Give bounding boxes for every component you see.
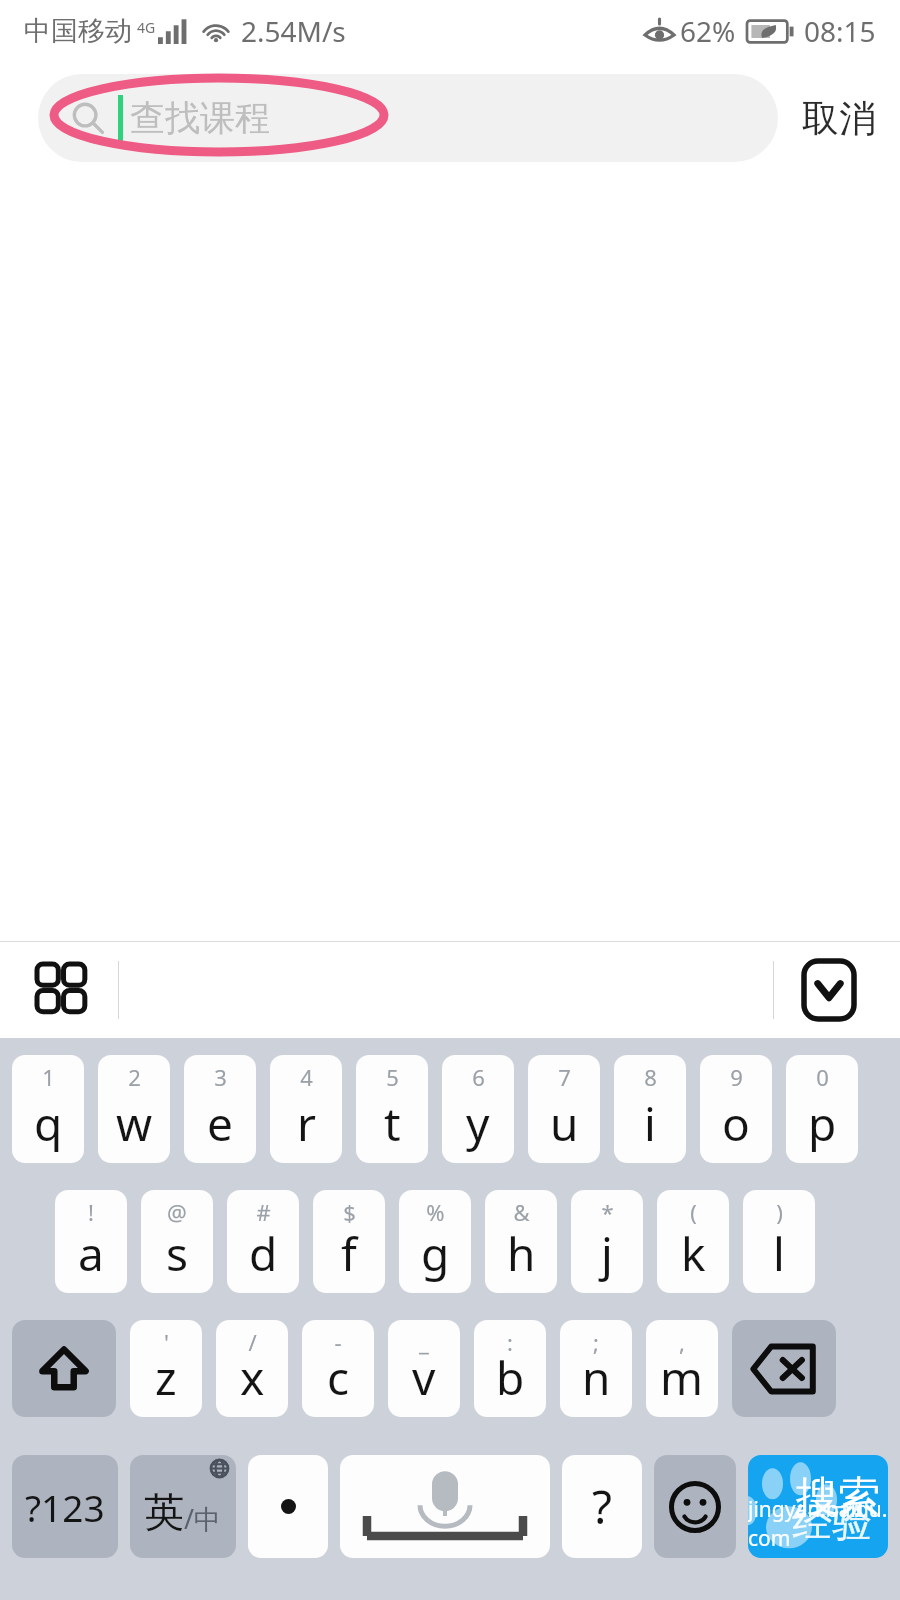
staticText: ): [776, 1197, 783, 1227]
staticText: k: [681, 1222, 706, 1285]
staticText: g: [421, 1222, 450, 1285]
staticText: 2: [128, 1062, 141, 1092]
staticText: x: [240, 1346, 265, 1409]
staticText: e: [207, 1092, 233, 1155]
staticText: v: [412, 1346, 436, 1409]
button[interactable]: 9: [700, 1055, 772, 1163]
staticText: 4G: [137, 18, 156, 37]
button[interactable]: Emoji: [654, 1455, 736, 1558]
staticText: u: [550, 1092, 579, 1155]
staticText: 8: [644, 1062, 657, 1092]
staticText: 4: [300, 1062, 313, 1092]
button[interactable]: 6: [442, 1055, 514, 1163]
staticText: 7: [558, 1062, 571, 1092]
staticText: 6: [472, 1062, 485, 1092]
button[interactable]: &: [485, 1190, 557, 1293]
button[interactable]: :: [474, 1320, 546, 1417]
button[interactable]: 1: [12, 1055, 84, 1163]
button[interactable]: #: [227, 1190, 299, 1293]
button[interactable]: 查找课程: [38, 74, 778, 162]
button[interactable]: Space: [340, 1455, 550, 1558]
staticText: 08:15: [804, 12, 876, 50]
staticText: _: [419, 1327, 429, 1357]
staticText: 取消: [802, 95, 876, 142]
button[interactable]: 4: [270, 1055, 342, 1163]
button[interactable]: 2: [98, 1055, 170, 1163]
staticText: ': [164, 1327, 169, 1357]
staticText: z: [155, 1346, 177, 1409]
button[interactable]: @: [141, 1190, 213, 1293]
button[interactable]: 5: [356, 1055, 428, 1163]
staticText: jingyan.baidu.com: [748, 1495, 888, 1553]
staticText: r: [297, 1092, 316, 1155]
staticText: ;: [593, 1327, 599, 1357]
staticText: j: [601, 1222, 613, 1285]
staticText: 3: [214, 1062, 227, 1092]
staticText: o: [722, 1092, 750, 1155]
button[interactable]: (: [657, 1190, 729, 1293]
button[interactable]: !: [55, 1190, 127, 1293]
staticText: (: [690, 1197, 697, 1227]
staticText: m: [660, 1346, 704, 1409]
button[interactable]: ,: [646, 1320, 718, 1417]
button[interactable]: 0: [786, 1055, 858, 1163]
staticText: b: [496, 1346, 525, 1409]
staticText: n: [582, 1346, 611, 1409]
staticText: 62%: [680, 12, 736, 50]
staticText: f: [341, 1222, 357, 1285]
button[interactable]: Backspace: [732, 1320, 836, 1417]
staticText: 查找课程: [130, 96, 270, 140]
button[interactable]: Period: [248, 1455, 328, 1558]
staticText: ?123: [25, 1482, 105, 1532]
staticText: 1: [42, 1062, 55, 1092]
staticText: 中国移动: [24, 14, 132, 48]
staticText: c: [327, 1346, 350, 1409]
staticText: :: [507, 1327, 513, 1357]
button[interactable]: %: [399, 1190, 471, 1293]
button[interactable]: Hide keyboard: [794, 955, 864, 1025]
button[interactable]: _: [388, 1320, 460, 1417]
button[interactable]: 取消: [802, 95, 876, 142]
staticText: d: [249, 1222, 278, 1285]
staticText: h: [507, 1222, 536, 1285]
staticText: #: [256, 1197, 271, 1227]
staticText: q: [34, 1092, 63, 1155]
staticText: 0: [816, 1062, 829, 1092]
staticText: ,: [679, 1327, 685, 1357]
staticText: @: [167, 1197, 187, 1227]
button[interactable]: ': [130, 1320, 202, 1417]
button[interactable]: Search: [748, 1455, 888, 1558]
button[interactable]: 3: [184, 1055, 256, 1163]
staticText: l: [773, 1222, 785, 1285]
button[interactable]: ?123: [12, 1455, 118, 1558]
button[interactable]: 8: [614, 1055, 686, 1163]
staticText: p: [808, 1092, 837, 1155]
staticText: s: [166, 1222, 189, 1285]
staticText: -: [334, 1327, 342, 1357]
staticText: !: [88, 1197, 94, 1227]
staticText: 英: [144, 1487, 184, 1537]
staticText: a: [78, 1222, 104, 1285]
staticText: w: [116, 1092, 153, 1155]
staticText: &: [513, 1197, 530, 1227]
button[interactable]: *: [571, 1190, 643, 1293]
staticText: ?: [592, 1475, 612, 1538]
staticText: t: [384, 1092, 401, 1155]
button[interactable]: $: [313, 1190, 385, 1293]
staticText: 5: [386, 1062, 399, 1092]
staticText: 搜索: [796, 1471, 880, 1524]
button[interactable]: /: [216, 1320, 288, 1417]
staticText: i: [644, 1092, 656, 1155]
button[interactable]: Switch input language: [130, 1455, 236, 1558]
button[interactable]: -: [302, 1320, 374, 1417]
staticText: /: [248, 1327, 257, 1357]
staticText: y: [466, 1092, 490, 1155]
staticText: 9: [730, 1062, 743, 1092]
button[interactable]: ): [743, 1190, 815, 1293]
staticText: %: [426, 1197, 445, 1227]
button[interactable]: Shift: [12, 1320, 116, 1417]
button[interactable]: ?: [562, 1455, 642, 1558]
button[interactable]: 7: [528, 1055, 600, 1163]
button[interactable]: Keyboard layouts: [28, 955, 98, 1025]
button[interactable]: ;: [560, 1320, 632, 1417]
